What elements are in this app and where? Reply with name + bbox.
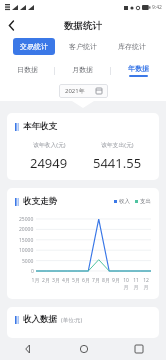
- staticText: 10000: [19, 247, 34, 254]
- button[interactable]: 最近任务: [111, 338, 166, 360]
- staticText: 收支走势: [23, 196, 57, 207]
- button[interactable]: 返回: [0, 14, 23, 37]
- button[interactable]: 交易统计: [13, 38, 55, 55]
- button[interactable]: 收入数据: [7, 307, 159, 338]
- staticText: 该年收入(元): [33, 141, 66, 149]
- button[interactable]: 收支走势: [7, 188, 159, 299]
- staticText: 20000: [19, 226, 34, 233]
- staticText: 1月: [30, 277, 41, 284]
- staticText: 年数据: [128, 64, 149, 73]
- staticText: 客户统计: [69, 42, 97, 51]
- staticText: 收入数据: [23, 314, 57, 325]
- staticText: 本年收支: [23, 121, 57, 132]
- staticText: 10月: [121, 277, 131, 291]
- staticText: 交易统计: [20, 42, 48, 51]
- button[interactable]: 2021年: [59, 84, 108, 98]
- staticText: 8月: [101, 277, 111, 284]
- staticText: 库存统计: [118, 42, 146, 51]
- staticText: 月数据: [72, 65, 93, 74]
- staticText: 5月: [71, 277, 81, 284]
- staticText: (单位:元): [61, 316, 83, 324]
- staticText: 9:42: [152, 4, 162, 11]
- staticText: 该年支出(元): [101, 141, 134, 149]
- staticText: 5441.55: [93, 154, 142, 172]
- button[interactable]: 主页: [56, 338, 111, 360]
- staticText: 24949: [30, 154, 68, 172]
- staticText: 6月: [81, 277, 91, 284]
- staticText: 0: [31, 268, 34, 275]
- staticText: 收入: [119, 198, 130, 205]
- staticText: 3月: [51, 277, 61, 284]
- staticText: 支出: [140, 198, 151, 205]
- button[interactable]: 月数据: [55, 61, 110, 80]
- button[interactable]: 库存统计: [111, 38, 153, 55]
- staticText: 7月: [91, 277, 101, 284]
- button[interactable]: 客户统计: [62, 38, 104, 55]
- button[interactable]: 日数据: [0, 61, 54, 80]
- staticText: 2月: [41, 277, 51, 284]
- button[interactable]: 年数据: [111, 61, 166, 80]
- staticText: 4月: [61, 277, 71, 284]
- staticText: 15000: [19, 237, 34, 244]
- button[interactable]: 返回: [0, 338, 56, 360]
- button[interactable]: 本年收支: [7, 113, 159, 180]
- staticText: 日数据: [17, 65, 38, 74]
- staticText: 25000: [19, 216, 34, 223]
- staticText: 9月: [111, 277, 121, 284]
- staticText: 2021年: [65, 87, 85, 95]
- staticText: 11月: [131, 277, 141, 291]
- staticText: 12月: [141, 277, 151, 291]
- staticText: 数据统计: [64, 20, 102, 32]
- staticText: 5000: [22, 258, 34, 265]
